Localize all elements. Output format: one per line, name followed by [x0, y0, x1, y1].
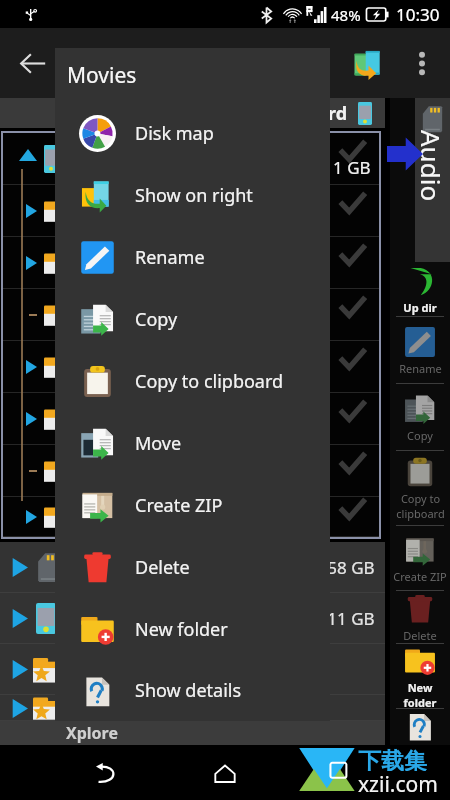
button[interactable]: Disk map — [55, 102, 330, 164]
button[interactable]: Rename — [390, 317, 450, 383]
button[interactable]: Audio tab — [415, 98, 450, 262]
staticText: Xplore — [66, 722, 118, 744]
button[interactable]: Show details — [55, 660, 330, 721]
staticText: /11 GB — [321, 607, 375, 630]
staticText: New folder — [390, 680, 450, 708]
staticText: Rename — [399, 361, 442, 376]
button[interactable]: New folder — [390, 644, 450, 708]
button[interactable]: Transfer — [344, 39, 392, 87]
button[interactable]: Create ZIP — [390, 526, 450, 590]
staticText: Create ZIP — [393, 569, 447, 584]
button[interactable]: Show on right — [55, 164, 330, 226]
staticText: Move — [135, 431, 182, 456]
button[interactable]: Back — [8, 39, 56, 87]
button[interactable]: Move — [55, 412, 330, 474]
staticText: Copy — [135, 307, 178, 332]
staticText: Disk map — [135, 121, 214, 146]
staticText: Audio — [414, 130, 449, 202]
button[interactable]: Copy to clipboard — [55, 350, 330, 412]
staticText: Rename — [135, 245, 205, 270]
button[interactable]: New folder — [55, 598, 330, 660]
staticText: rd — [328, 101, 348, 126]
staticText: 10:30 — [396, 3, 440, 26]
staticText: /11 GB — [317, 156, 371, 179]
button[interactable]: Up dir — [390, 262, 450, 316]
staticText: 48% — [331, 5, 361, 25]
button[interactable]: Back — [84, 751, 128, 795]
staticText: Copy — [407, 428, 433, 443]
button[interactable]: Copy — [390, 384, 450, 450]
button[interactable]: Copy to clipboard — [390, 451, 450, 525]
button[interactable]: More options — [400, 41, 444, 85]
staticText: Movies — [67, 61, 137, 90]
staticText: xzji.com — [358, 770, 438, 792]
staticText: Delete — [403, 628, 437, 643]
staticText: New folder — [135, 617, 228, 642]
button[interactable]: Copy — [55, 288, 330, 350]
staticText: Copy to clipboard — [135, 369, 284, 394]
button[interactable]: Delete — [390, 591, 450, 643]
button[interactable]: Show details — [390, 709, 450, 745]
staticText: Up dir — [403, 300, 437, 315]
button[interactable]: Delete — [55, 536, 330, 598]
button[interactable]: Create ZIP — [55, 474, 330, 536]
staticText: /58 GB — [321, 556, 375, 579]
staticText: Show on right — [135, 183, 253, 208]
staticText: Delete — [135, 555, 190, 580]
staticText: Show details — [135, 678, 242, 703]
button[interactable]: Rename — [55, 226, 330, 288]
staticText: Copy to clipboard — [396, 491, 445, 521]
button[interactable]: Home — [203, 751, 247, 795]
staticText: Create ZIP — [135, 493, 223, 518]
staticText: 下载集 — [358, 747, 427, 771]
